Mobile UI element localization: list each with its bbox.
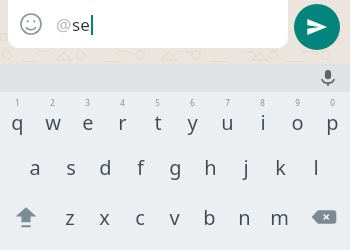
staticText: o [291,109,304,136]
staticText: l [313,154,319,181]
button[interactable]: c [122,192,157,242]
staticText: 4 [120,97,125,108]
staticText: e [82,109,94,136]
button[interactable]: Voice input [316,66,340,90]
staticText: t [154,109,162,136]
staticText: s [66,154,76,181]
staticText: 5 [155,97,160,108]
button[interactable]: 3 [70,92,105,142]
button[interactable]: 8 [245,92,280,142]
staticText: k [275,154,286,181]
staticText: p [326,109,339,136]
staticText: b [203,204,216,231]
staticText: @ [56,13,72,36]
staticText: v [169,204,180,231]
staticText: 1 [15,97,20,108]
staticText: w [45,109,61,136]
staticText: u [221,109,234,136]
staticText: f [137,154,144,181]
staticText: h [204,154,217,181]
button[interactable]: Send [294,4,340,50]
button[interactable]: h [193,142,228,192]
button[interactable]: Backspace [297,192,350,242]
button[interactable]: z [52,192,87,242]
button[interactable]: g [158,142,193,192]
staticText: r [118,109,127,136]
staticText: 8 [260,97,265,108]
button[interactable]: v [157,192,192,242]
button[interactable]: x [87,192,122,242]
button[interactable]: 0 [315,92,350,142]
staticText: j [243,154,249,181]
staticText: 9 [295,97,300,108]
button[interactable]: d [88,142,123,192]
staticText: 7 [225,97,230,108]
staticText: c [135,204,145,231]
button[interactable]: m [262,192,297,242]
staticText: x [99,204,110,231]
staticText: 2 [50,97,55,108]
button[interactable]: 4 [105,92,140,142]
staticText: i [260,109,266,136]
button[interactable]: l [298,142,333,192]
staticText: q [11,109,24,136]
button[interactable]: f [123,142,158,192]
staticText: se [72,13,90,36]
button[interactable]: 6 [175,92,210,142]
button[interactable]: Shift [0,192,52,242]
staticText: 3 [85,97,90,108]
staticText: g [169,154,182,181]
staticText: 6 [190,97,195,108]
button[interactable]: Emoji [8,0,288,48]
button[interactable]: s [53,142,88,192]
button[interactable]: b [192,192,227,242]
button[interactable]: 7 [210,92,245,142]
staticText: n [238,204,251,231]
button[interactable]: Emoji [18,11,44,37]
staticText: 0 [330,97,335,108]
button[interactable]: 1 [0,92,35,142]
button[interactable]: 5 [140,92,175,142]
staticText: a [29,154,41,181]
staticText: d [99,154,112,181]
staticText: m [270,204,289,231]
button[interactable]: j [228,142,263,192]
staticText: y [187,109,198,136]
staticText: z [65,204,75,231]
button[interactable]: n [227,192,262,242]
button[interactable]: a [17,142,53,192]
button[interactable]: k [263,142,298,192]
button[interactable]: 2 [35,92,70,142]
button[interactable]: 9 [280,92,315,142]
